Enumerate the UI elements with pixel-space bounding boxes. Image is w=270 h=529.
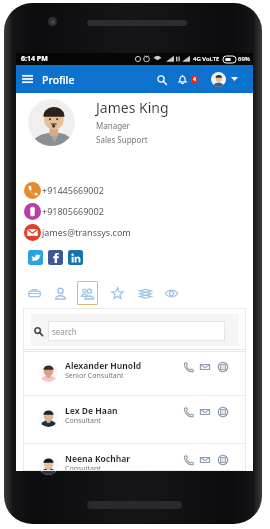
button[interactable]: Search field <box>48 321 225 341</box>
button[interactable]: Mobile <box>24 202 104 220</box>
staticText: 4 <box>193 76 196 83</box>
button[interactable]: Contacts <box>50 281 71 305</box>
staticText: Consultant <box>65 464 101 474</box>
button[interactable]: Twitter <box>28 250 43 265</box>
button[interactable]: Message Neena Kochhar <box>216 453 230 467</box>
button[interactable]: Message Lex De Haan <box>216 405 230 419</box>
button[interactable]: People <box>77 281 98 305</box>
button[interactable]: Products <box>135 281 156 305</box>
button[interactable]: Email Lex De Haan <box>198 405 212 419</box>
staticText: 4G VoLTE <box>193 55 220 63</box>
button[interactable]: Email Neena Kochhar <box>198 453 212 467</box>
button[interactable]: Favourites <box>107 281 128 305</box>
button[interactable]: Email <box>24 223 131 241</box>
staticText: search <box>52 326 77 337</box>
button[interactable]: Call Alexander Hunold <box>182 360 196 374</box>
button[interactable]: Call Neena Kochhar <box>182 453 196 467</box>
button[interactable]: More options <box>228 73 240 85</box>
staticText: James King <box>96 98 169 117</box>
staticText: 6:14 PM <box>21 54 48 64</box>
staticText: Consultant <box>65 416 101 426</box>
staticText: james@transsys.com <box>42 226 131 238</box>
staticText: Senior Consultant <box>65 371 124 381</box>
staticText: +91805669002 <box>42 205 104 217</box>
button[interactable]: Message Alexander Hunold <box>216 360 230 374</box>
staticText: 69% <box>238 55 250 63</box>
button[interactable]: Neena Kochhar <box>23 444 246 471</box>
staticText: Sales Support <box>96 134 148 145</box>
button[interactable]: Activity <box>161 281 182 305</box>
button[interactable]: Menu <box>18 70 36 88</box>
staticText: Neena Kochhar <box>65 453 131 465</box>
button[interactable]: LinkedIn <box>68 250 83 265</box>
button[interactable]: Company <box>24 281 45 305</box>
button[interactable]: Call Lex De Haan <box>182 405 196 419</box>
staticText: Alexander Hunold <box>65 360 142 372</box>
button[interactable]: Alexander Hunold <box>23 351 246 395</box>
staticText: Lex De Haan <box>65 405 118 417</box>
staticText: +91445669002 <box>42 184 104 196</box>
button[interactable]: Account <box>211 72 226 87</box>
button[interactable]: Search <box>153 71 170 88</box>
staticText: Profile <box>42 73 75 87</box>
button[interactable]: Call <box>24 181 104 199</box>
button[interactable]: Facebook <box>48 250 63 265</box>
button[interactable]: Lex De Haan <box>23 396 246 443</box>
staticText: Manager <box>96 120 130 131</box>
button[interactable]: Notifications <box>174 71 191 88</box>
button[interactable]: Email Alexander Hunold <box>198 360 212 374</box>
